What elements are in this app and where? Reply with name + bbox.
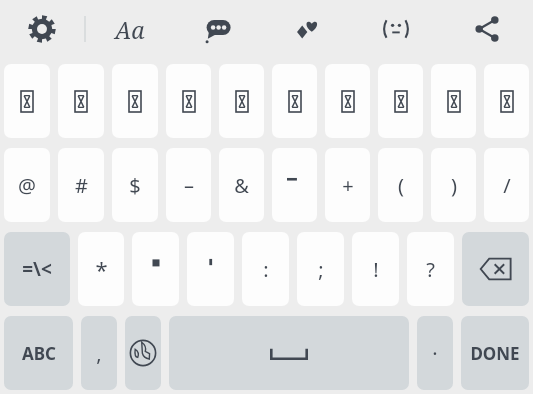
button[interactable] xyxy=(166,64,211,138)
button[interactable]: ? xyxy=(407,232,454,306)
staticText: · xyxy=(432,340,438,367)
button[interactable]: DONE xyxy=(461,316,529,390)
button[interactable]: hyphen xyxy=(272,148,317,222)
staticText: $ xyxy=(129,172,141,199)
staticText: ? xyxy=(426,256,435,283)
staticText: : xyxy=(263,256,269,283)
button[interactable]: Change language xyxy=(125,316,161,390)
staticText: / xyxy=(503,172,511,199)
button[interactable]: Share xyxy=(440,0,533,58)
button[interactable]: =\< xyxy=(4,232,70,306)
button[interactable]: / xyxy=(484,148,529,222)
button[interactable] xyxy=(4,64,50,138)
staticText: Aa xyxy=(115,14,145,45)
button[interactable]: Settings xyxy=(0,0,84,58)
button[interactable]: ABC xyxy=(4,316,73,390)
staticText: ) xyxy=(451,172,457,199)
staticText: =\< xyxy=(22,256,52,282)
button[interactable]: · xyxy=(417,316,453,390)
button[interactable] xyxy=(112,64,158,138)
staticText: ! xyxy=(373,256,379,283)
button[interactable]: quote xyxy=(132,232,179,306)
staticText: ABC xyxy=(22,342,56,365)
button[interactable]: + xyxy=(325,148,370,222)
button[interactable] xyxy=(431,64,476,138)
button[interactable] xyxy=(484,64,529,138)
button[interactable]: * xyxy=(78,232,124,306)
staticText: DONE xyxy=(470,342,520,365)
button[interactable]: : xyxy=(242,232,289,306)
staticText: # xyxy=(75,172,88,199)
button[interactable]: ; xyxy=(297,232,344,306)
button[interactable]: Emoticons xyxy=(351,0,440,58)
button[interactable]: # xyxy=(58,148,104,222)
button[interactable]: apostrophe xyxy=(187,232,234,306)
button[interactable]: Aa xyxy=(86,0,174,58)
button[interactable]: , xyxy=(81,316,117,390)
button[interactable] xyxy=(58,64,104,138)
button[interactable]: Stickers xyxy=(174,0,262,58)
staticText: – xyxy=(184,172,194,199)
button[interactable]: – xyxy=(166,148,211,222)
staticText: & xyxy=(234,172,249,199)
staticText: + xyxy=(342,172,354,199)
button[interactable]: Symbols xyxy=(262,0,351,58)
button[interactable]: ) xyxy=(431,148,476,222)
button[interactable] xyxy=(325,64,370,138)
button[interactable] xyxy=(272,64,317,138)
button[interactable]: ! xyxy=(352,232,399,306)
staticText: ; xyxy=(318,256,324,283)
button[interactable]: Backspace xyxy=(462,232,529,306)
button[interactable] xyxy=(219,64,264,138)
button[interactable]: Space xyxy=(169,316,409,390)
button[interactable]: ( xyxy=(378,148,423,222)
staticText: @ xyxy=(18,172,36,199)
button[interactable]: $ xyxy=(112,148,158,222)
button[interactable]: @ xyxy=(4,148,50,222)
button[interactable]: & xyxy=(219,148,264,222)
staticText: * xyxy=(95,254,108,284)
button[interactable] xyxy=(378,64,423,138)
staticText: ( xyxy=(398,172,404,199)
staticText: , xyxy=(96,340,102,367)
